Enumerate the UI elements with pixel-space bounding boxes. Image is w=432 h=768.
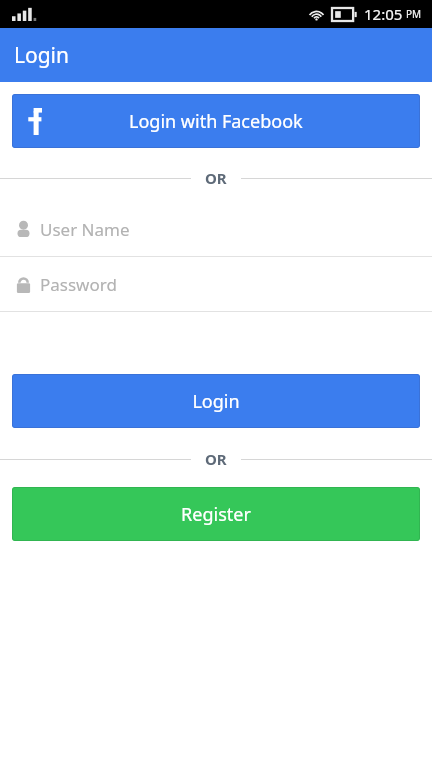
staticText: Login — [192, 389, 240, 414]
staticText: Login with Facebook — [129, 109, 303, 134]
staticText: OR — [205, 168, 227, 188]
staticText: Register — [181, 502, 251, 527]
staticText: Login — [14, 41, 70, 70]
button[interactable]: Login with Facebook — [12, 94, 420, 148]
button[interactable]: Login — [12, 374, 420, 428]
button[interactable]: User Name — [0, 202, 432, 257]
staticText: 12:05 — [364, 4, 403, 24]
button[interactable]: Password — [0, 257, 432, 312]
staticText: Password — [40, 273, 117, 296]
staticText: User Name — [40, 218, 130, 241]
staticText: PM — [406, 7, 422, 21]
button[interactable]: Register — [12, 487, 420, 541]
staticText: OR — [205, 449, 227, 469]
